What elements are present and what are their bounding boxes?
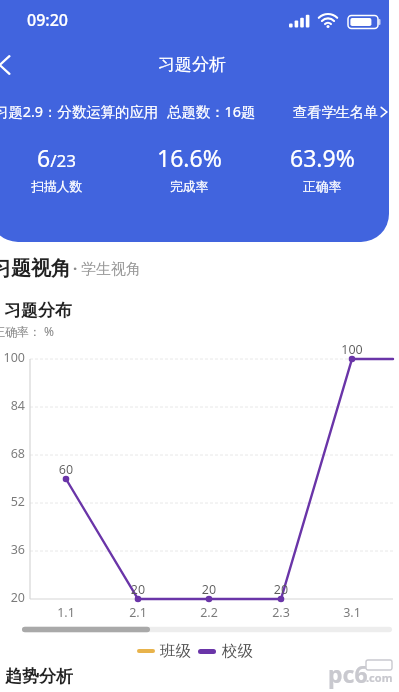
staticText: 2.1 <box>118 604 158 621</box>
staticText: 总题数：16题 <box>167 102 256 122</box>
staticText: 学生视角 <box>81 260 141 279</box>
staticText: 3.1 <box>332 604 372 621</box>
button[interactable]: 63.9% <box>256 142 389 195</box>
staticText: 20 <box>0 589 25 606</box>
staticText: 63.9% <box>290 142 355 173</box>
staticText: 09:20 <box>27 9 68 31</box>
staticText: 36 <box>0 541 25 558</box>
button[interactable]: 校级 <box>198 641 253 661</box>
button[interactable]: 6/23 <box>0 142 123 195</box>
staticText: 84 <box>0 397 25 414</box>
staticText: pc6 <box>328 658 368 689</box>
staticText: 100 <box>0 349 25 366</box>
staticText: 20 <box>118 581 158 598</box>
staticText: 6/23 <box>37 142 76 173</box>
staticText: · <box>73 258 78 278</box>
staticText: 习题2.9：分数运算的应用 <box>0 102 159 122</box>
button[interactable]: 习题视角 <box>0 256 71 281</box>
staticText: 扫描人数 <box>31 179 83 195</box>
staticText: 20 <box>189 581 229 598</box>
staticText: 正确率 <box>303 179 342 195</box>
button[interactable]: 学生视角 <box>81 262 141 281</box>
button[interactable]: 班级 <box>137 641 191 661</box>
staticText: 正确率： % <box>0 323 55 339</box>
staticText: 完成率 <box>170 179 209 195</box>
staticText: 52 <box>0 493 25 510</box>
button[interactable]: 16.6% <box>123 142 256 195</box>
button[interactable]: Back <box>0 44 26 86</box>
staticText: 68 <box>0 445 25 462</box>
staticText: 校级 <box>222 641 253 661</box>
staticText: 习题分析 <box>158 54 226 75</box>
staticText: 习题分布 <box>4 300 72 321</box>
staticText: 1.1 <box>46 604 86 621</box>
button[interactable]: 查看学生名单 <box>293 103 389 121</box>
staticText: 20 <box>261 581 301 598</box>
staticText: 60 <box>46 461 86 478</box>
staticText: 2.2 <box>189 604 229 621</box>
staticText: 查看学生名单 <box>293 103 379 121</box>
staticText: 100 <box>332 341 372 358</box>
staticText: .com <box>366 670 393 685</box>
staticText: 16.6% <box>157 142 222 173</box>
staticText: 趋势分析 <box>5 666 73 687</box>
staticText: 习题视角 <box>0 256 71 281</box>
staticText: 2.3 <box>261 604 301 621</box>
staticText: 班级 <box>160 641 191 661</box>
